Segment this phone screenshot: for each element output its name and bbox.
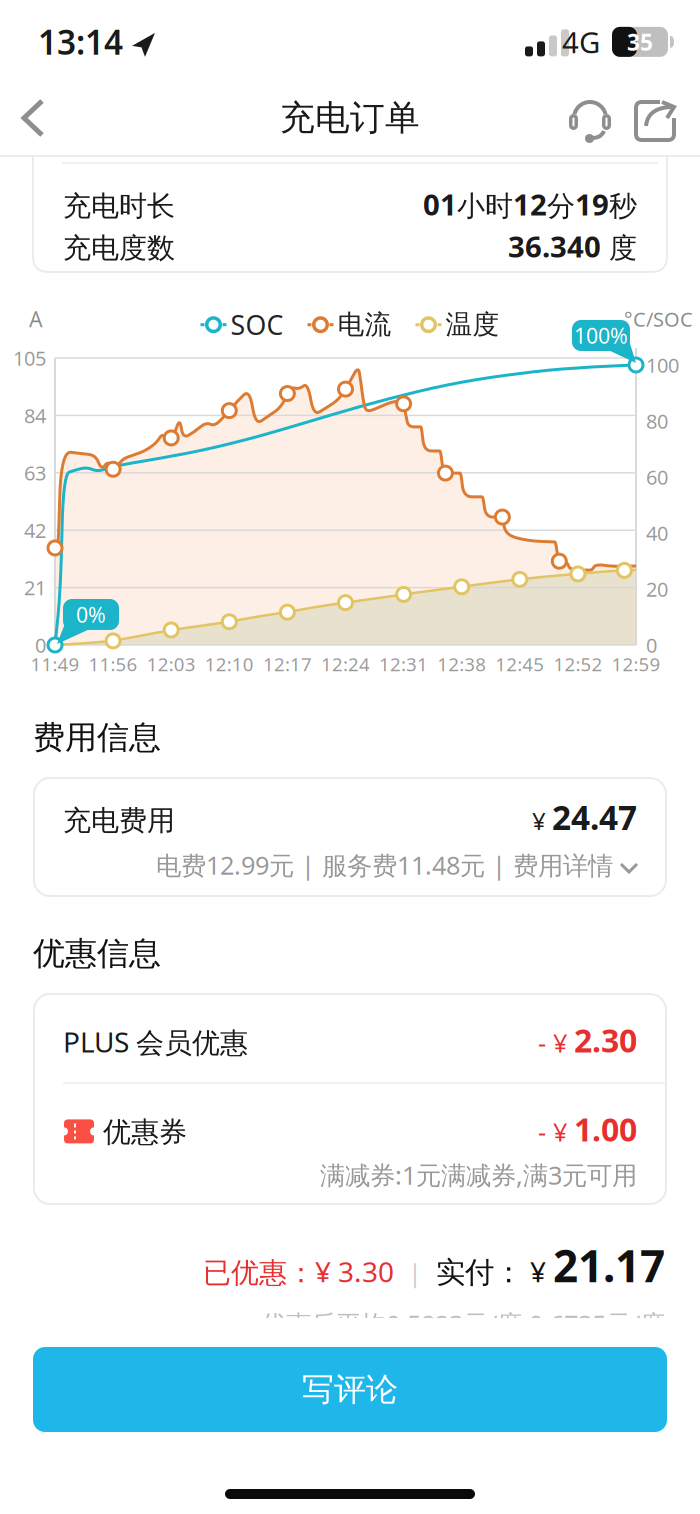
button[interactable]: Share [632,94,678,142]
staticText: 105 [13,345,46,371]
staticText: 19 [575,184,609,223]
staticText: 实付： [436,1254,523,1290]
staticText: 12:31 [379,652,428,676]
staticText: | [394,1256,436,1289]
staticText: 12:52 [553,652,602,676]
staticText: 0 [646,632,657,658]
staticText: 12:17 [263,652,312,676]
staticText: 12:45 [495,652,544,676]
staticText: 分 [547,189,575,223]
button[interactable]: Customer service [566,94,614,142]
staticText: 电流 [337,308,391,341]
staticText: 0 [35,632,46,658]
button[interactable]: PLUS 会员优惠 [63,1015,637,1065]
staticText: PLUS 会员优惠 [63,1023,248,1060]
staticText: 80 [646,408,668,434]
staticText: 21 [24,574,46,601]
staticText: 充电时长 [63,189,175,223]
staticText: 小时 [457,189,513,223]
staticText: 已优惠： [203,1256,315,1290]
staticText: 12:59 [611,652,660,676]
staticText: ¥ 3.30 [315,1253,394,1290]
staticText: 满减券:1元满减券,满3元可用 [320,1158,637,1192]
staticText: °C/SOC [624,306,693,332]
staticText: - ¥ [538,1026,574,1059]
staticText: 100 [646,352,679,378]
staticText: 12:24 [321,652,370,676]
staticText: 20 [646,576,668,602]
staticText: 42 [24,517,46,543]
staticText: 1.00 [574,1108,637,1150]
staticText: 13:14 [38,20,123,64]
staticText: ¥ [523,1253,553,1290]
staticText: 40 [646,520,668,546]
staticText: 优惠信息 [33,934,161,973]
staticText: 温度 [445,308,499,341]
staticText: 充电度数 [63,231,175,265]
staticText: 充电订单 [280,97,420,139]
staticText: 21.17 [553,1236,665,1294]
button[interactable]: Back [0,81,60,155]
staticText: 36.340 [508,226,601,265]
staticText: 24.47 [552,795,637,839]
staticText: 63 [24,459,46,486]
staticText: 4G [562,22,600,61]
staticText: 01 [423,184,457,223]
staticText: 2.30 [574,1019,637,1061]
staticText: 12:03 [147,652,196,676]
button[interactable]: 优惠券 [63,1104,637,1154]
staticText: 11:56 [89,652,138,676]
staticText: 0% [76,600,106,629]
staticText: 电费12.99元 | 服务费11.48元 | 费用详情 [156,848,613,882]
staticText: 11:49 [30,652,79,676]
button[interactable]: 写评论 [33,1347,667,1432]
staticText: ¥ [532,805,552,837]
staticText: 100% [574,321,628,350]
staticText: 写评论 [302,1370,398,1409]
staticText: 12:38 [437,652,486,676]
button[interactable]: 电费12.99元 | 服务费11.48元 | 费用详情 [63,848,637,882]
staticText: SOC [230,307,283,342]
staticText: 充电费用 [63,803,175,838]
staticText: 12:10 [205,652,254,676]
staticText: 84 [24,402,46,429]
staticText: 35 [627,27,653,57]
staticText: 优惠券 [95,1115,187,1149]
staticText: 60 [646,464,668,490]
staticText: 优惠后平均0.5823元/度 0.6735元/度 [261,1307,665,1341]
staticText: 12 [513,184,547,223]
staticText: 费用信息 [33,718,161,757]
staticText: - ¥ [538,1115,574,1148]
staticText: 度 [601,231,637,265]
staticText: A [29,305,43,333]
staticText: 秒 [609,189,637,223]
